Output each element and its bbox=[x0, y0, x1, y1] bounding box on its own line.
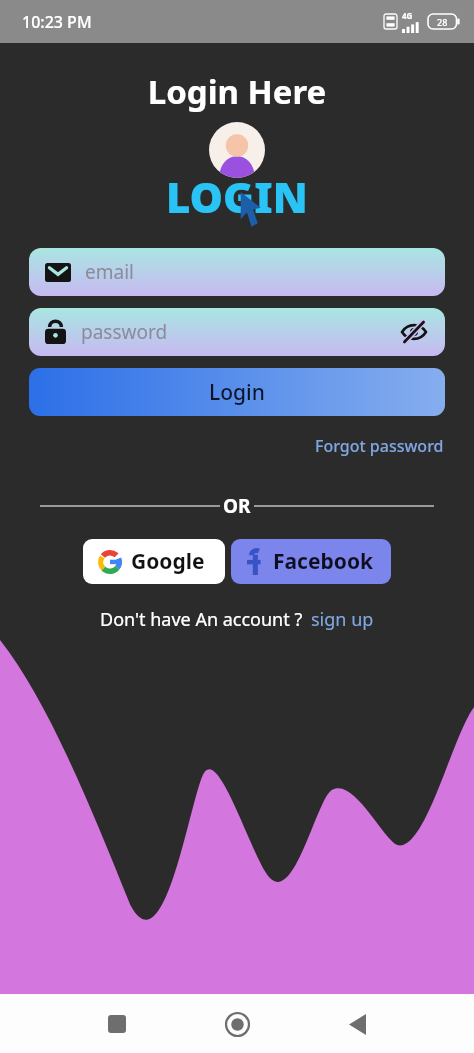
staticText: 28 bbox=[437, 16, 448, 28]
button[interactable]: Google bbox=[83, 539, 225, 584]
staticText: Google bbox=[131, 547, 205, 576]
staticText: Don't have An account ? bbox=[100, 607, 303, 632]
staticText: Facebook bbox=[273, 547, 374, 576]
staticText: email bbox=[85, 259, 134, 285]
button[interactable]: Show password bbox=[399, 317, 429, 347]
button[interactable]: Recents bbox=[93, 1000, 141, 1048]
button[interactable]: Login bbox=[29, 368, 445, 416]
staticText: 10:23 PM bbox=[22, 11, 92, 33]
staticText: Login bbox=[209, 378, 265, 407]
staticText: LOGIN bbox=[166, 168, 308, 225]
button[interactable]: password bbox=[29, 308, 445, 356]
button[interactable]: Forgot password bbox=[311, 431, 448, 461]
button[interactable]: Back bbox=[333, 1000, 381, 1048]
button[interactable]: Home bbox=[213, 1000, 261, 1048]
staticText: Forgot password bbox=[315, 435, 444, 457]
button[interactable]: email bbox=[29, 248, 445, 296]
staticText: password bbox=[81, 319, 399, 345]
button[interactable]: sign up bbox=[311, 607, 374, 632]
staticText: sign up bbox=[311, 607, 374, 632]
staticText: Login Here bbox=[0, 69, 474, 114]
staticText: OR bbox=[223, 493, 251, 519]
button[interactable]: Facebook bbox=[231, 539, 391, 584]
staticText: 4G bbox=[402, 10, 413, 21]
